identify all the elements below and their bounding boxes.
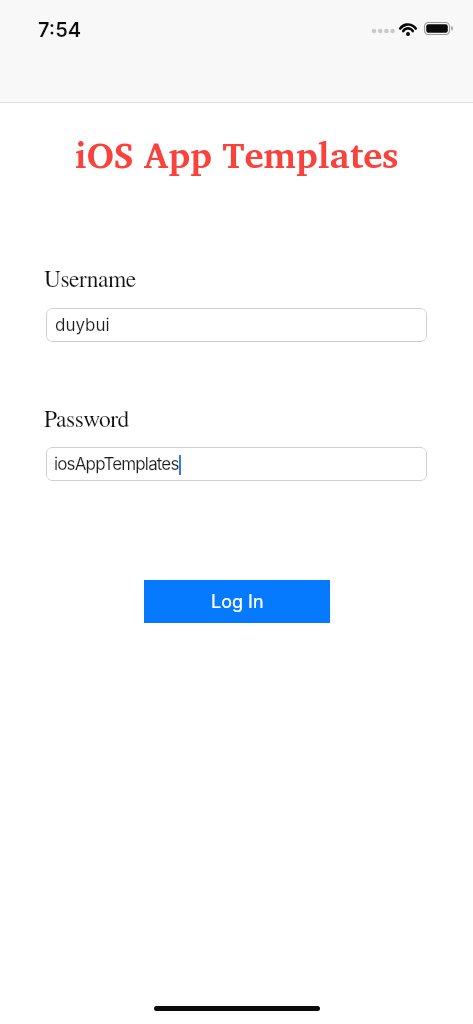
staticText: duybui <box>55 315 110 336</box>
button[interactable]: duybui <box>46 308 427 342</box>
button[interactable]: iosAppTemplates <box>46 447 427 481</box>
staticText: iosAppTemplates <box>54 454 179 475</box>
button[interactable]: Log In <box>144 580 330 623</box>
staticText: 7:54 <box>38 18 82 42</box>
staticText: Log In <box>211 591 264 613</box>
staticText: Password <box>44 402 129 433</box>
staticText: Username <box>44 262 136 293</box>
staticText: iOS App Templates <box>0 125 473 184</box>
